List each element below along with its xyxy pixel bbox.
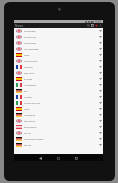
- staticText: Handelsblatt: [24, 114, 99, 117]
- staticText: El Pais: [24, 54, 99, 57]
- button[interactable]: The Independent: [14, 46, 103, 52]
- button[interactable]: Daily Express: [14, 118, 103, 124]
- button[interactable]: Le Figaro: [14, 94, 103, 100]
- button[interactable]: Bild: [14, 88, 103, 94]
- staticText: Liberation: [24, 66, 99, 69]
- staticText: El Mundo: [24, 78, 99, 81]
- staticText: Daily Express: [24, 120, 99, 123]
- staticText: Corriere della Sera: [24, 102, 99, 105]
- button[interactable]: Financial Times: [14, 58, 103, 64]
- button[interactable]: El Pais: [14, 52, 103, 58]
- button[interactable]: The Sun: [14, 130, 103, 136]
- button[interactable]: Corriere della Sera: [14, 100, 103, 106]
- button[interactable]: The Guardian: [14, 28, 103, 34]
- button[interactable]: La Repubblica: [14, 82, 103, 88]
- button[interactable]: Kleine Zeitung: [14, 124, 103, 130]
- staticText: The Telegraph: [24, 42, 99, 45]
- button[interactable]: Marca: [14, 106, 103, 112]
- button[interactable]: Sueddeutsche Zeitung: [14, 136, 103, 142]
- button[interactable]: El Mundo: [14, 76, 103, 82]
- staticText: Sueddeutsche Zeitung: [24, 138, 99, 141]
- staticText: The Independent: [24, 48, 99, 51]
- button[interactable]: Search: [86, 23, 90, 28]
- button[interactable]: The Telegraph: [14, 40, 103, 46]
- staticText: Kleine Zeitung: [24, 126, 99, 129]
- staticText: Le Figaro: [24, 96, 99, 99]
- button[interactable]: Recents: [74, 156, 79, 161]
- button[interactable]: Liberation: [14, 64, 103, 70]
- button[interactable]: Home: [56, 156, 61, 161]
- button[interactable]: The Daily Mail: [14, 34, 103, 40]
- button[interactable]: Favorites: [94, 23, 98, 28]
- staticText: Die Welt: [24, 144, 99, 147]
- button[interactable]: Die Welt: [14, 142, 103, 148]
- button[interactable]: More options: [98, 23, 102, 28]
- staticText: Marca: [24, 108, 99, 111]
- staticText: La Repubblica: [24, 84, 99, 87]
- staticText: The Daily Mail: [24, 36, 99, 39]
- staticText: Bild: [24, 90, 99, 93]
- staticText: News: [15, 24, 24, 28]
- staticText: Daily Mirror: [24, 72, 99, 75]
- staticText: The Guardian: [24, 30, 99, 33]
- button[interactable]: Handelsblatt: [14, 112, 103, 118]
- staticText: The Sun: [24, 132, 99, 135]
- button[interactable]: Back: [38, 156, 43, 161]
- button[interactable]: Refresh: [90, 23, 94, 28]
- staticText: 9:41: [95, 20, 102, 23]
- button[interactable]: Daily Mirror: [14, 70, 103, 76]
- staticText: Financial Times: [24, 60, 99, 63]
